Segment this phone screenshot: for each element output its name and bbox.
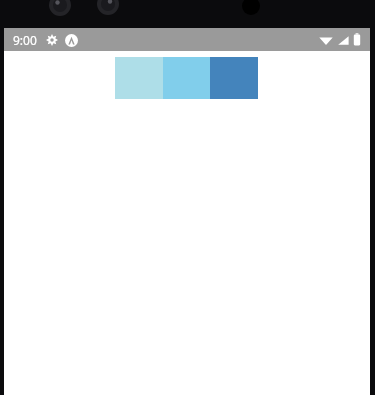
staticText: 9:00 [13,32,37,48]
